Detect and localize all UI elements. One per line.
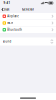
button[interactable]: Back (0, 6, 9, 13)
staticText: 9:41 (4, 1, 11, 5)
staticText: Back (4, 8, 9, 11)
staticText: Wi-Fi (7, 21, 13, 25)
button[interactable]: Wi-Fi (0, 20, 56, 26)
staticText: Sound (3, 40, 12, 43)
staticText: Bluetooth (7, 28, 22, 31)
button[interactable]: Sound (0, 37, 56, 45)
staticText: General (22, 8, 34, 11)
staticText: Airplane (7, 14, 19, 18)
button[interactable]: Airplane (0, 13, 56, 19)
button[interactable]: Bluetooth (0, 26, 56, 33)
